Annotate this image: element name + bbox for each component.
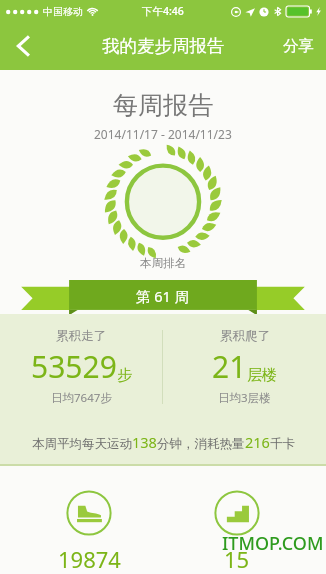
staticText: 21 [212,346,247,387]
staticText: 第 61 周 [136,286,190,306]
staticText: 分钟，消耗热量 [157,436,245,452]
button[interactable]: Floors [177,490,297,574]
staticText: 中国移动 [43,5,83,18]
staticText: 累积走了 [56,328,106,344]
staticText: 15 [224,544,250,574]
staticText: 层楼 [247,366,277,385]
staticText: 216 [245,432,270,452]
other: Floors [214,490,260,536]
staticText: 日均7647步 [51,390,112,406]
staticText: 千卡 [270,436,295,452]
staticText: ITMOP.COM [222,531,324,556]
staticText: 我的麦步周报告 [102,35,225,57]
staticText: 下午4:46 [142,4,184,18]
staticText: 累积爬了 [220,328,270,344]
staticText: 本周平均每天运动 [32,436,132,452]
staticText: 138 [132,432,157,452]
staticText: 19874 [58,544,121,574]
button[interactable]: Steps [29,490,149,574]
staticText: 分享 [283,36,314,56]
button[interactable]: Back [0,22,46,70]
staticText: 步 [117,366,132,385]
staticText: 本周排名 [140,256,186,270]
other: Steps [66,490,112,536]
staticText: 日均3层楼 [218,390,271,406]
staticText: 每周报告 [113,90,213,121]
staticText: 2014/11/17 - 2014/11/23 [94,126,232,142]
button[interactable]: 分享 [283,22,314,70]
staticText: 53529 [31,346,117,387]
